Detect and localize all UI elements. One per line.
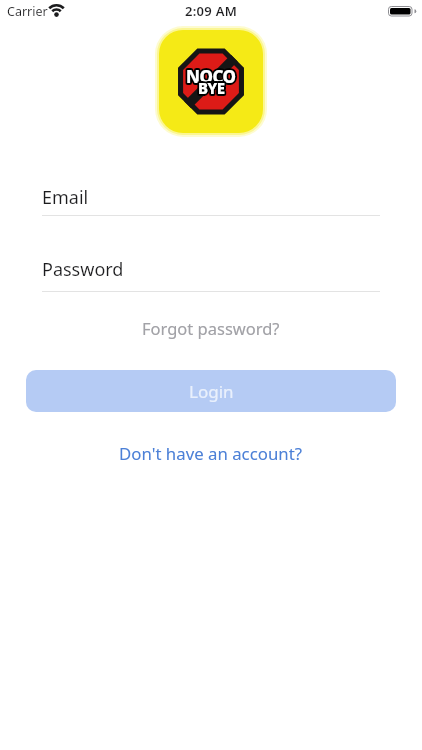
button[interactable]: Email [26,179,396,219]
staticText: BYE [198,78,225,98]
button[interactable]: Login [26,370,396,412]
button[interactable]: Forgot password? [138,313,284,343]
staticText: Forgot password? [142,317,280,339]
staticText: Password [42,257,124,282]
staticText: Login [189,380,234,403]
staticText: Don't have an account? [119,442,303,465]
staticText: NOCO [186,65,236,88]
staticText: NOCO [186,65,236,88]
staticText: Email [42,185,89,210]
button[interactable]: Password [26,251,396,291]
staticText: Carrier [7,3,48,20]
button[interactable]: Don't have an account? [115,438,307,469]
staticText: BYE [198,78,225,98]
staticText: 2:09 AM [185,2,238,20]
